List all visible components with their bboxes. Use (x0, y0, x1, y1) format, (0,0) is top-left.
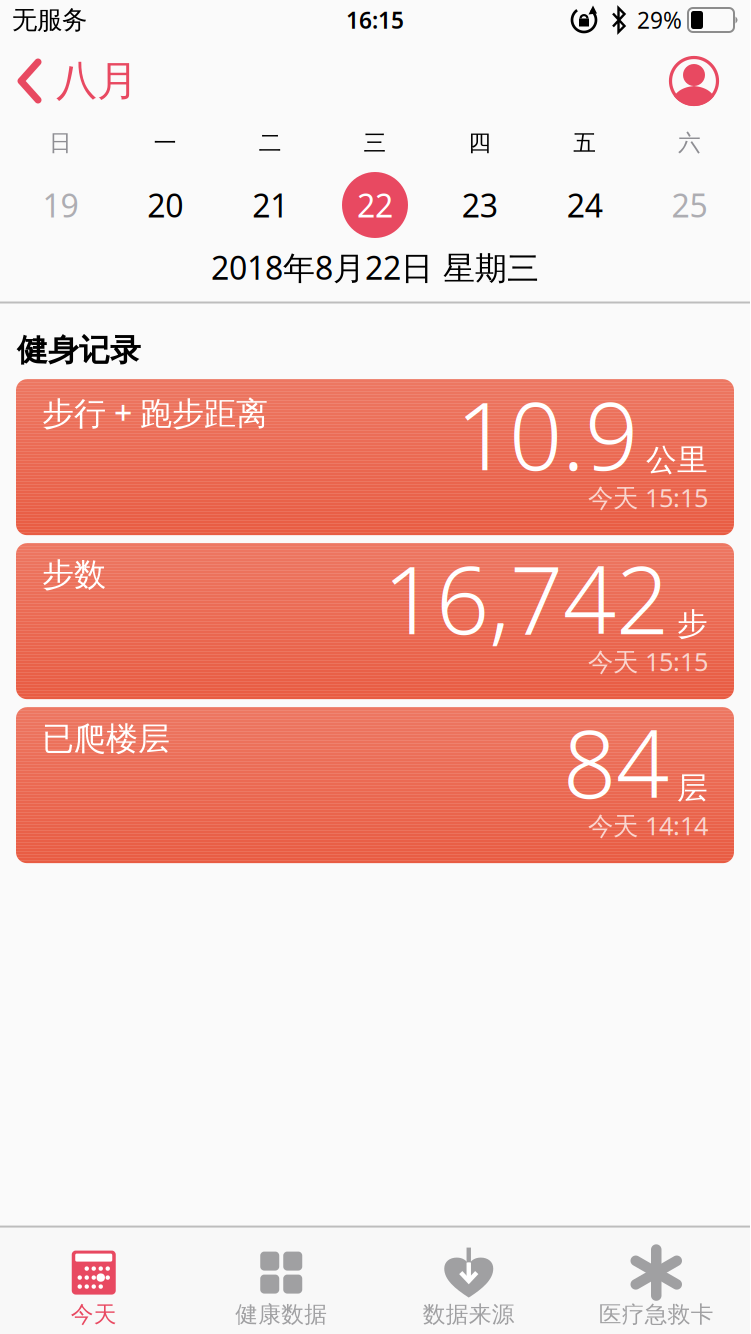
staticText: 21 (252, 184, 288, 226)
staticText: 22 (357, 184, 393, 226)
staticText: 医疗急救卡 (599, 1301, 714, 1328)
staticText: 84 (563, 700, 669, 824)
staticText: 29% (637, 5, 682, 35)
button[interactable]: 20 (113, 184, 218, 226)
staticText: 六 (678, 129, 701, 157)
staticText: 健康数据 (235, 1301, 327, 1328)
button[interactable]: 步行 + 跑步距离 (16, 379, 734, 535)
staticText: 已爬楼层 (42, 719, 170, 758)
button[interactable]: 25 (637, 184, 742, 226)
staticText: 公里 (646, 441, 708, 479)
staticText: 四 (468, 129, 491, 157)
button[interactable]: 已爬楼层 (16, 707, 734, 863)
staticText: 步 (677, 605, 708, 643)
button[interactable]: 今天 (0, 1250, 187, 1328)
staticText: 步数 (42, 555, 106, 594)
button[interactable]: 23 (427, 184, 532, 226)
staticText: 今天 15:15 (588, 644, 708, 678)
staticText: 日 (49, 129, 72, 157)
staticText: 健身记录 (17, 331, 141, 369)
staticText: 无服务 (12, 4, 87, 35)
staticText: 步行 + 跑步距离 (42, 391, 268, 434)
staticText: 今天 15:15 (588, 480, 708, 514)
button[interactable]: 健康资料 (668, 55, 750, 107)
button[interactable]: 22 (323, 172, 427, 238)
button[interactable]: 数据来源 (375, 1250, 562, 1328)
button[interactable]: 19 (8, 184, 113, 226)
staticText: 20 (147, 184, 183, 226)
staticText: 23 (462, 184, 498, 226)
staticText: 一 (154, 129, 177, 157)
button[interactable]: 步数 (16, 543, 734, 699)
staticText: 层 (677, 769, 708, 807)
staticText: 八月 (56, 56, 138, 106)
staticText: 10.9 (456, 372, 638, 496)
staticText: 25 (672, 184, 708, 226)
button[interactable]: 健康数据 (187, 1250, 375, 1328)
button[interactable]: 21 (218, 184, 323, 226)
staticText: 16,742 (383, 536, 669, 660)
button[interactable]: 24 (532, 184, 637, 226)
staticText: 五 (573, 129, 596, 157)
staticText: 今天 14:14 (588, 808, 708, 842)
staticText: 二 (259, 129, 282, 157)
button[interactable]: 返回 八月 (0, 56, 138, 106)
staticText: 2018年8月22日 星期三 (211, 246, 539, 288)
staticText: 今天 (71, 1301, 117, 1328)
staticText: 24 (567, 184, 603, 226)
staticText: 19 (42, 184, 78, 226)
button[interactable]: 医疗急救卡 (562, 1250, 750, 1328)
staticText: 16:15 (346, 5, 404, 35)
staticText: 数据来源 (423, 1301, 515, 1328)
staticText: 三 (363, 129, 386, 157)
